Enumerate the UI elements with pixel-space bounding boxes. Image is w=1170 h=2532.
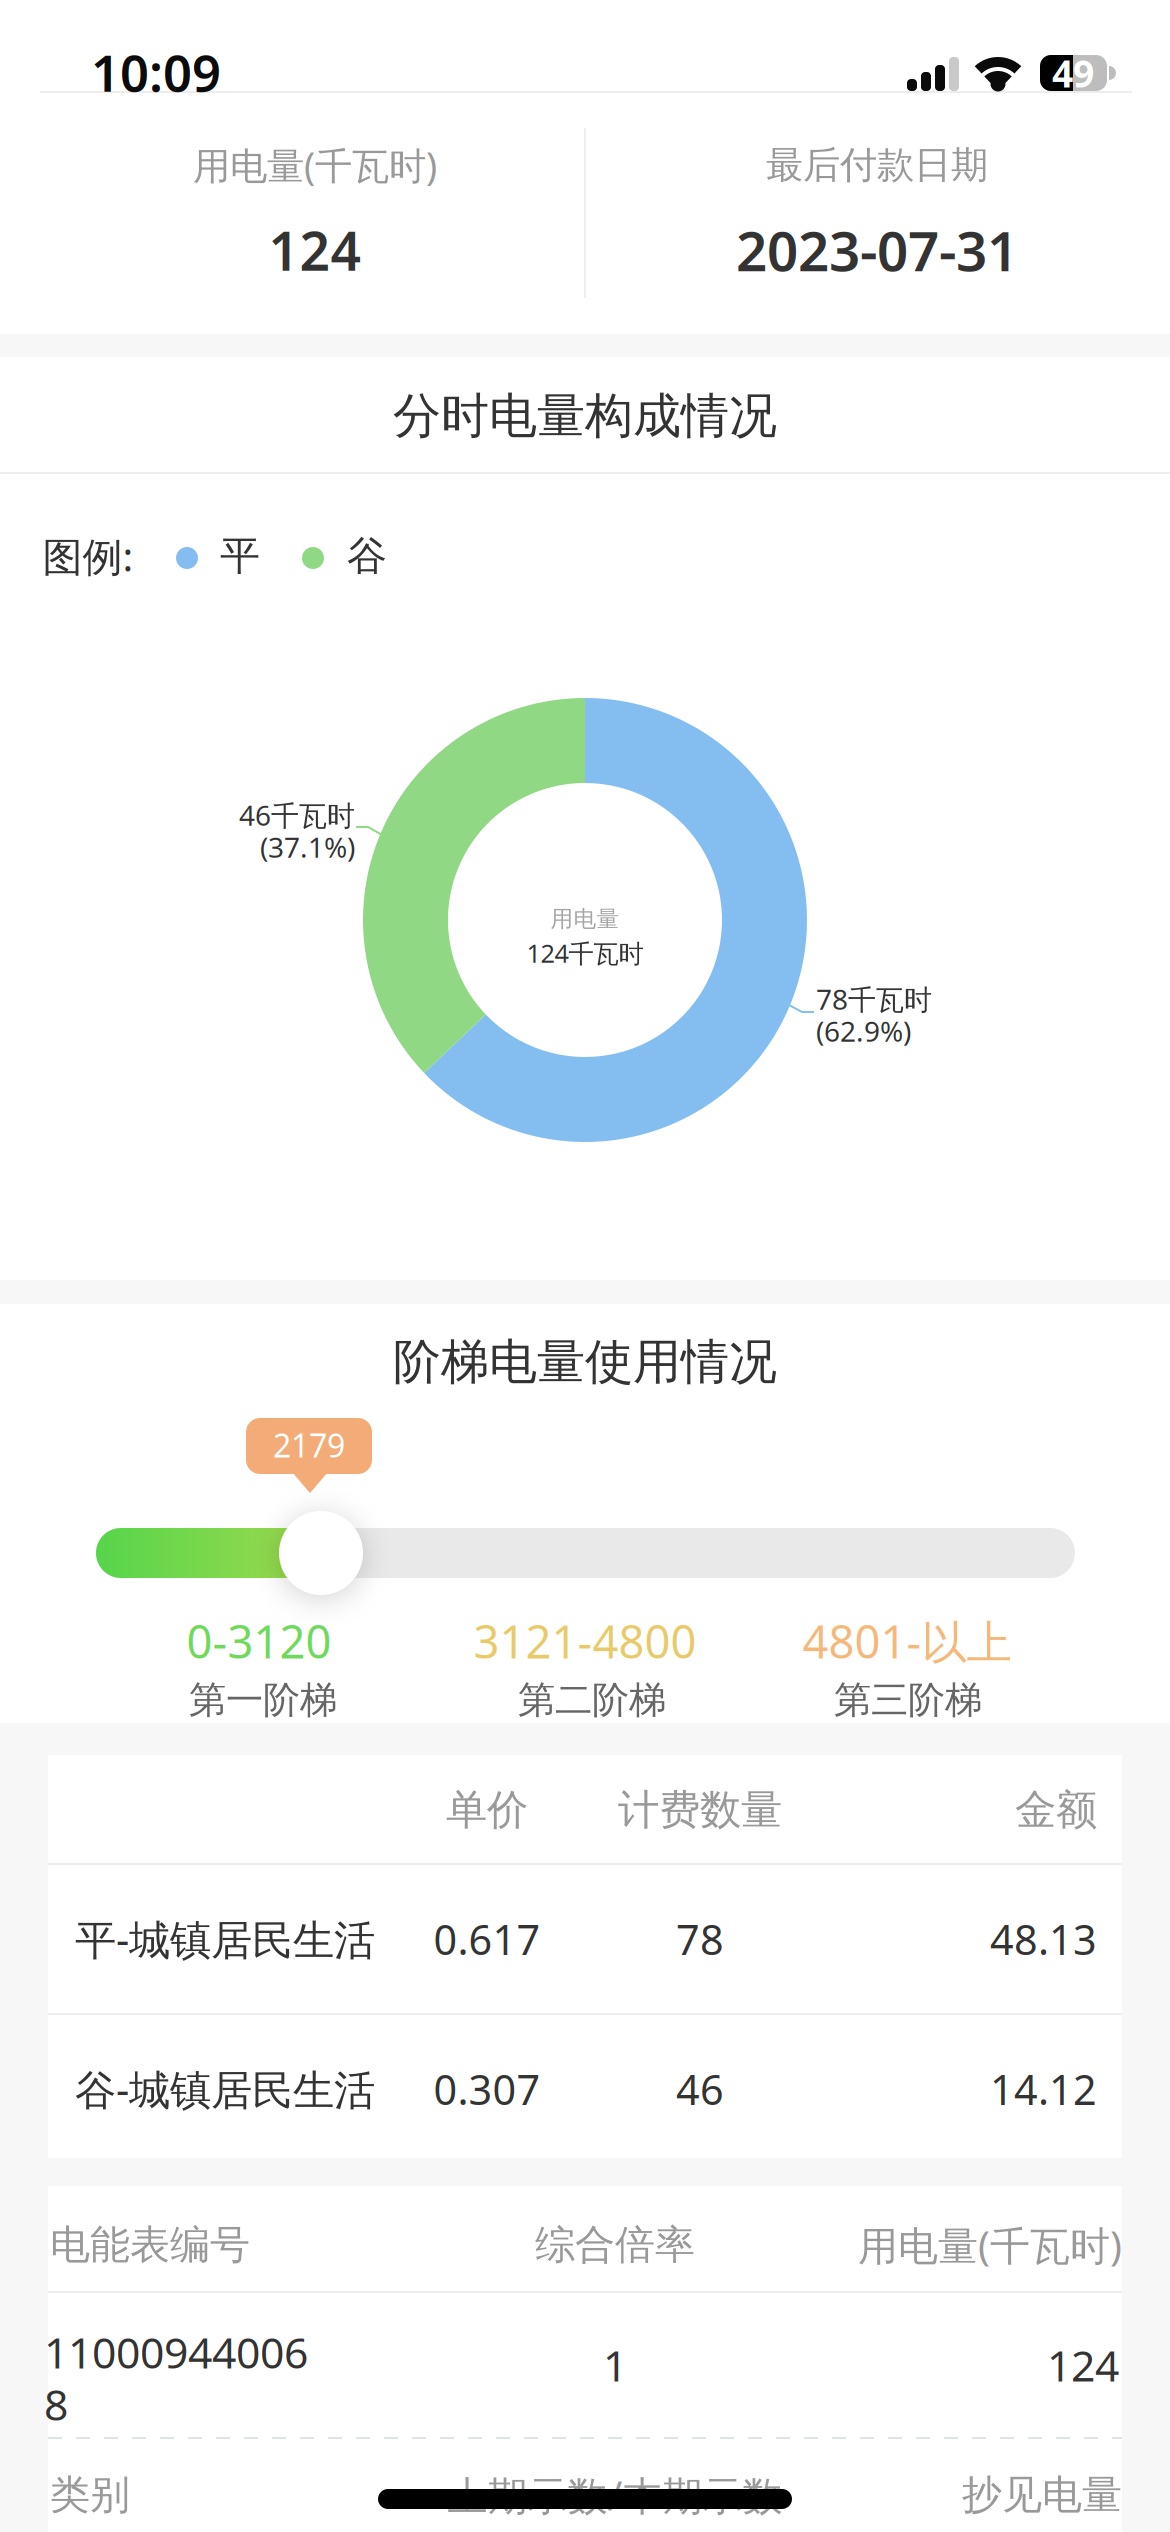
staticText: 用电量(千瓦时) <box>193 140 437 190</box>
staticText: (37.1%) <box>260 828 355 866</box>
staticText: 0.307 <box>433 2062 540 2116</box>
staticText: 2023-07-31 <box>736 214 1018 286</box>
staticText: 46千瓦时 <box>239 796 355 834</box>
staticText: 49 <box>1052 48 1094 98</box>
staticText: 0-3120 <box>186 1611 331 1671</box>
staticText: 抄见电量 <box>962 2470 1122 2519</box>
staticText: 第二阶梯 <box>518 1677 666 1723</box>
staticText: 10:09 <box>91 38 221 106</box>
staticText: 2179 <box>273 1424 345 1466</box>
staticText: 用电量 <box>550 905 619 933</box>
staticText: 计费数量 <box>618 1785 782 1835</box>
staticText: 第三阶梯 <box>834 1677 982 1723</box>
staticText: 4801-以上 <box>802 1611 1011 1671</box>
staticText: 最后付款日期 <box>766 142 988 188</box>
staticText: 用电量(千瓦时) <box>858 2218 1122 2271</box>
staticText: 谷-城镇居民生活 <box>75 2062 375 2116</box>
staticText: 124 <box>268 215 361 285</box>
staticText: 图例: <box>42 529 133 582</box>
staticText: 第一阶梯 <box>189 1677 337 1723</box>
staticText: 48.13 <box>990 1912 1097 1966</box>
staticText: 金额 <box>1015 1785 1097 1835</box>
staticText: (62.9%) <box>816 1012 911 1050</box>
staticText: 124 <box>1047 2337 1119 2393</box>
staticText: 谷 <box>347 531 387 580</box>
staticText: 类别 <box>50 2470 130 2519</box>
staticText: 平-城镇居民生活 <box>75 1912 375 1966</box>
staticText: 平 <box>220 531 260 580</box>
staticText: 单价 <box>446 1785 528 1835</box>
staticText: 阶梯电量使用情况 <box>393 1332 777 1391</box>
staticText: 上期示数/本期示数 <box>447 2468 782 2521</box>
staticText: 综合倍率 <box>535 2220 695 2269</box>
button[interactable]: 阶梯电量滑块 2179 <box>279 1511 363 1595</box>
staticText: 8 <box>44 2376 68 2432</box>
staticText: 11000944006 <box>44 2324 308 2380</box>
staticText: 78千瓦时 <box>816 980 932 1018</box>
staticText: 124千瓦时 <box>526 936 643 970</box>
staticText: 78 <box>676 1912 724 1966</box>
staticText: 14.12 <box>990 2062 1097 2116</box>
staticText: 1 <box>603 2337 627 2393</box>
staticText: 0.617 <box>433 1912 540 1966</box>
staticText: 3121-4800 <box>473 1611 696 1671</box>
staticText: 46 <box>676 2062 724 2116</box>
staticText: 分时电量构成情况 <box>393 386 777 445</box>
staticText: 电能表编号 <box>50 2220 250 2269</box>
